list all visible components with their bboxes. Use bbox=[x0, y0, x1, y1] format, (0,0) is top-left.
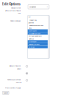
button[interactable]: Assigned bbox=[28, 5, 49, 9]
staticText: Company bbox=[29, 29, 37, 32]
button[interactable]: Save bbox=[2, 91, 9, 94]
button[interactable]: Company bbox=[28, 29, 48, 32]
button[interactable]: Mobile Number bbox=[28, 32, 48, 35]
staticText: (Select All) bbox=[29, 19, 37, 21]
button[interactable]: Manager bbox=[28, 40, 48, 43]
staticText: × bbox=[47, 6, 48, 8]
staticText: Street address bbox=[29, 35, 42, 37]
staticText: Edit Options bbox=[2, 2, 21, 6]
staticText: Office bbox=[29, 38, 34, 40]
staticText: Mobile Number bbox=[29, 32, 41, 35]
staticText: City bbox=[29, 27, 32, 29]
button[interactable]: City bbox=[28, 27, 48, 29]
staticText: Department bbox=[29, 43, 40, 45]
staticText: ☑ bbox=[28, 16, 30, 18]
button[interactable]: Street address bbox=[28, 35, 48, 37]
staticText: for bbox=[18, 12, 21, 15]
button[interactable]: Option bbox=[26, 79, 28, 82]
staticText: Telephone Number bbox=[29, 24, 44, 27]
button[interactable]: Option bbox=[26, 65, 28, 68]
button[interactable]: Selected option bbox=[26, 72, 28, 75]
button[interactable]: Telephone Number bbox=[28, 24, 48, 27]
staticText: Job title bbox=[29, 21, 34, 24]
staticText: Pretty print IT value bbox=[5, 86, 21, 89]
staticText: Directory attribute bbox=[5, 9, 21, 12]
staticText: Manager bbox=[29, 40, 37, 43]
staticText: E-mail bbox=[29, 46, 34, 48]
button[interactable]: Office bbox=[28, 37, 48, 40]
staticText: Display Active bbox=[11, 6, 21, 9]
staticText: Portal bbox=[16, 81, 21, 83]
staticText: Assigned bbox=[29, 6, 36, 8]
staticText: Fields to display bbox=[10, 20, 21, 22]
button[interactable]: Job title bbox=[28, 21, 48, 24]
staticText: Save bbox=[4, 92, 8, 94]
staticText: How to Customize bbox=[7, 78, 21, 81]
staticText: which bbox=[17, 67, 21, 70]
staticText: Hide attributes bbox=[9, 65, 21, 67]
button[interactable]: Department bbox=[28, 43, 48, 46]
button[interactable]: E-mail bbox=[28, 46, 48, 48]
button[interactable]: (Select All) bbox=[28, 19, 48, 21]
